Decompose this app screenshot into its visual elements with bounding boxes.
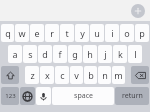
staticText: t bbox=[65, 27, 69, 39]
button[interactable]: k bbox=[113, 45, 127, 63]
button[interactable]: w bbox=[15, 24, 29, 42]
button[interactable]: n bbox=[98, 66, 111, 84]
staticText: space bbox=[74, 91, 93, 101]
button[interactable]: v bbox=[70, 66, 83, 84]
staticText: l bbox=[134, 48, 137, 60]
button[interactable]: u bbox=[90, 24, 104, 42]
staticText: r bbox=[50, 27, 54, 39]
staticText: v bbox=[74, 69, 79, 81]
button[interactable]: Backspace bbox=[131, 66, 149, 84]
staticText: k bbox=[118, 48, 123, 60]
staticText: h bbox=[87, 48, 93, 60]
button[interactable]: Shift bbox=[1, 66, 19, 84]
staticText: x bbox=[45, 69, 50, 81]
button[interactable]: z bbox=[25, 66, 39, 84]
staticText: u bbox=[94, 27, 100, 39]
staticText: o bbox=[124, 27, 130, 39]
button[interactable]: g bbox=[68, 45, 82, 63]
staticText: f bbox=[58, 48, 62, 60]
button[interactable]: h bbox=[83, 45, 97, 63]
staticText: a bbox=[12, 48, 18, 60]
button[interactable]: l bbox=[128, 45, 142, 63]
staticText: m bbox=[114, 69, 123, 81]
staticText: e bbox=[34, 27, 40, 39]
button[interactable]: q bbox=[1, 24, 14, 42]
button[interactable]: f bbox=[53, 45, 67, 63]
button[interactable]: i bbox=[105, 24, 119, 42]
button[interactable]: x bbox=[40, 66, 54, 84]
button[interactable]: j bbox=[98, 45, 112, 63]
button[interactable]: y bbox=[75, 24, 89, 42]
staticText: n bbox=[102, 69, 108, 81]
button[interactable]: Add bbox=[131, 4, 145, 18]
staticText: z bbox=[30, 69, 35, 81]
button[interactable]: d bbox=[38, 45, 52, 63]
staticText: p bbox=[139, 27, 145, 39]
button[interactable]: o bbox=[120, 24, 134, 42]
button[interactable]: t bbox=[60, 24, 74, 42]
staticText: y bbox=[80, 27, 85, 39]
button[interactable]: e bbox=[30, 24, 44, 42]
staticText: w bbox=[18, 27, 26, 39]
staticText: i bbox=[111, 27, 114, 39]
staticText: return bbox=[122, 91, 143, 101]
button[interactable]: p bbox=[135, 24, 149, 42]
button[interactable]: b bbox=[84, 66, 97, 84]
button[interactable]: c bbox=[55, 66, 69, 84]
button[interactable]: m bbox=[112, 66, 125, 84]
button[interactable]: Change keyboard bbox=[20, 87, 35, 105]
staticText: 123 bbox=[5, 92, 16, 100]
staticText: c bbox=[60, 69, 65, 81]
button[interactable]: s bbox=[23, 45, 37, 63]
staticText: d bbox=[42, 48, 48, 60]
staticText: j bbox=[104, 48, 107, 60]
button[interactable]: 123 bbox=[1, 87, 19, 105]
button[interactable]: space bbox=[52, 87, 114, 105]
staticText: q bbox=[5, 27, 11, 39]
button[interactable]: a bbox=[8, 45, 22, 63]
button[interactable]: r bbox=[45, 24, 59, 42]
button[interactable]: return bbox=[115, 87, 149, 105]
button[interactable]: Dictation bbox=[36, 87, 51, 105]
staticText: g bbox=[72, 48, 78, 60]
staticText: b bbox=[88, 69, 94, 81]
staticText: s bbox=[28, 48, 33, 60]
